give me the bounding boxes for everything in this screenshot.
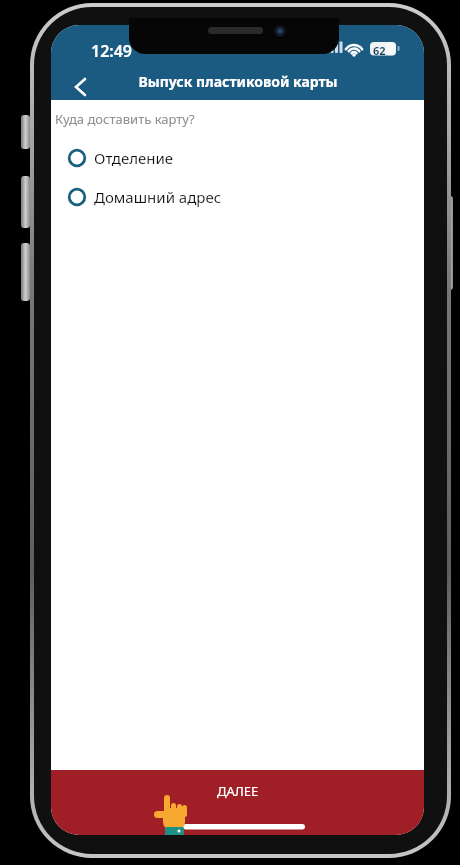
staticText: 62 <box>373 43 386 58</box>
staticText: Отделение <box>94 148 174 168</box>
button[interactable]: Домашний адрес <box>68 181 222 212</box>
staticText: ДАЛЕЕ <box>217 782 259 800</box>
staticText: Куда доставить карту? <box>55 110 195 128</box>
button[interactable]: ДАЛЕЕ <box>51 770 424 835</box>
staticText: Выпуск пластиковой карты <box>138 72 338 91</box>
staticText: 12:49 <box>91 40 133 62</box>
staticText: Домашний адрес <box>94 187 222 207</box>
button[interactable] <box>65 73 97 101</box>
button[interactable]: Отделение <box>68 142 174 173</box>
